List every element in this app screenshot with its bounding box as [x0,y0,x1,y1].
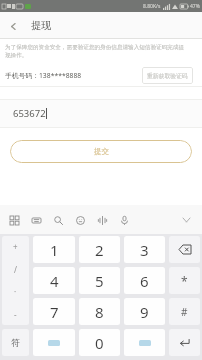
button[interactable]: 6 [124,267,165,294]
staticText: 7 [50,302,59,322]
staticText: 5 [95,271,104,291]
staticText: 8.80K/s [143,3,161,10]
staticText: 提交 [94,147,109,156]
staticText: 47% [190,3,200,10]
button[interactable]: 1 [33,236,75,263]
staticText: # [181,305,188,319]
staticText: 653672 [13,107,46,120]
button[interactable]: 符 [2,329,29,356]
button[interactable]: 重新获取验证码 [142,67,193,84]
button[interactable]: 0 [79,329,120,356]
button[interactable]: ABC [33,329,75,356]
button[interactable]: 3 [124,236,165,263]
button[interactable]: 7 [33,298,75,325]
staticText: / [14,264,17,275]
button[interactable]: 9 [124,298,165,325]
button[interactable]: voice [91,208,113,232]
staticText: 提现 [31,19,51,32]
staticText: 0 [95,333,104,353]
button[interactable]: # [169,298,200,325]
button[interactable]: emoji [69,208,91,232]
staticText: 为了保障您的资金安全，需要验证您的身份信息请输入短信验证码完成提现操作。 [5,44,189,58]
button[interactable]: Chinese [124,329,165,356]
button[interactable]: Backspace [169,236,200,263]
button[interactable]: Back [0,13,26,39]
staticText: 6 [140,271,149,291]
button[interactable]: grid [3,208,25,232]
button[interactable]: 8 [79,298,120,325]
button[interactable]: symbols [2,236,29,325]
staticText: 9 [140,302,149,322]
button[interactable]: 提交 [10,140,192,163]
button[interactable]: 5 [79,267,120,294]
staticText: · [14,286,17,297]
button[interactable]: * [169,267,200,294]
staticText: 符 [11,337,20,348]
button[interactable]: 4 [33,267,75,294]
staticText: 3 [140,240,149,260]
staticText: 重新获取验证码 [147,72,188,79]
button[interactable]: Enter [169,329,200,356]
button[interactable]: mic [113,208,135,232]
button[interactable]: Hide keyboard [175,208,197,232]
staticText: 2 [95,240,104,260]
button[interactable]: kb [25,208,47,232]
staticText: 1 [50,240,59,260]
staticText: - [14,309,17,320]
staticText: 8 [95,302,104,322]
staticText: 4 [50,271,59,291]
staticText: * [181,273,188,289]
staticText: 手机号码：138****8888 [5,71,82,80]
button[interactable]: search [47,208,69,232]
staticText: + [13,241,18,252]
button[interactable]: 2 [79,236,120,263]
